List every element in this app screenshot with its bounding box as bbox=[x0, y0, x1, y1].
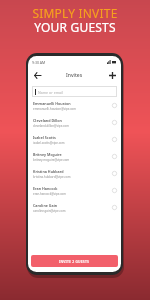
button[interactable]: Isabel Scotts bbox=[33, 131, 117, 148]
staticText: 9:30 AM bbox=[32, 60, 46, 65]
staticText: britney.mcguire@vipe.com bbox=[33, 158, 70, 162]
button[interactable]: Emmanuelli Houston bbox=[33, 97, 117, 114]
staticText: isabel.scotts@vipe.com bbox=[33, 141, 65, 145]
staticText: kristina.hubbard@vipe.com bbox=[33, 175, 71, 179]
button[interactable]: INVITE 2 GUESTS bbox=[31, 255, 118, 267]
button[interactable]: Back bbox=[32, 70, 42, 80]
button[interactable]: Caroline Gain bbox=[33, 199, 117, 216]
staticText: INVITE 2 GUESTS bbox=[59, 259, 90, 264]
button[interactable]: Add invitee bbox=[107, 70, 117, 80]
staticText: eran.hancock@vipe.com bbox=[33, 192, 67, 196]
button[interactable]: Kristina Hubbard bbox=[33, 165, 117, 182]
staticText: Eran Hancock bbox=[33, 186, 58, 191]
staticText: YOUR GUESTS bbox=[34, 19, 116, 35]
button[interactable]: Name or email bbox=[32, 86, 117, 97]
staticText: SIMPLY INVITE bbox=[32, 5, 118, 21]
staticText: Caroline Gain bbox=[33, 203, 58, 208]
staticText: Emmanuelli Houston bbox=[33, 101, 71, 106]
staticText: caroline.gain@vipe.com bbox=[33, 209, 66, 213]
staticText: Isabel Scotts bbox=[33, 135, 56, 140]
staticText: Cleveland Dillon bbox=[33, 118, 62, 123]
staticText: Name or email bbox=[38, 90, 63, 95]
button[interactable]: Cleveland Dillon bbox=[33, 114, 117, 131]
staticText: emmanuelli.houston@vipe.com bbox=[33, 107, 76, 111]
button[interactable]: Eran Hancock bbox=[33, 182, 117, 199]
staticText: Britney Mcguire bbox=[33, 152, 62, 157]
staticText: Invites bbox=[66, 72, 83, 79]
staticText: Kristina Hubbard bbox=[33, 169, 64, 174]
staticText: cleveland.dillon@vipe.com bbox=[33, 124, 69, 128]
button[interactable]: Britney Mcguire bbox=[33, 148, 117, 165]
